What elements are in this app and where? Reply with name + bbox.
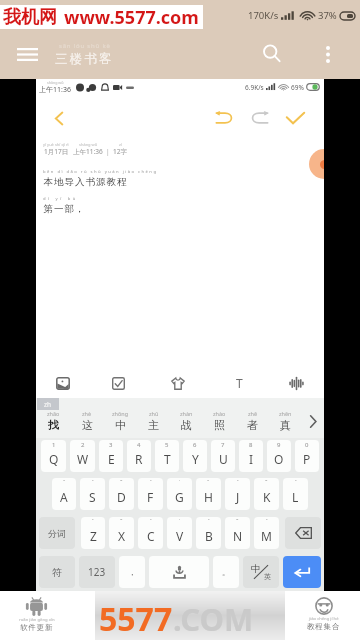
- button[interactable]: Redo: [248, 106, 272, 130]
- staticText: 1: [52, 441, 56, 449]
- staticText: ˊ: [92, 478, 94, 486]
- staticText: 4: [137, 441, 141, 449]
- staticText: ˙: [179, 478, 181, 486]
- button[interactable]: Enter: [283, 556, 321, 588]
- staticText: 9: [277, 441, 281, 449]
- staticText: www.5577.com: [64, 5, 199, 29]
- staticText: ˉ: [207, 478, 210, 486]
- button[interactable]: zhě: [236, 401, 269, 441]
- button[interactable]: Switch Chinese English: [243, 556, 279, 588]
- staticText: ，: [128, 567, 136, 577]
- button[interactable]: ˇ: [109, 478, 134, 510]
- button[interactable]: Text style: [226, 370, 252, 396]
- button[interactable]: Checklist: [105, 370, 131, 396]
- button[interactable]: Done: [282, 106, 308, 130]
- staticText: zhào: [213, 410, 226, 417]
- button[interactable]: More options: [310, 36, 346, 72]
- staticText: 5: [165, 441, 169, 449]
- button[interactable]: shū yuán: [143, 597, 216, 635]
- button[interactable]: ˊ: [81, 517, 105, 549]
- button[interactable]: ˉ: [196, 478, 221, 510]
- staticText: L: [292, 489, 299, 505]
- staticText: ˙: [179, 517, 181, 525]
- staticText: 69%: [291, 83, 304, 92]
- button[interactable]: More candidates: [302, 401, 324, 441]
- button[interactable]: ˊ: [254, 517, 279, 549]
- staticText: 这: [82, 418, 93, 432]
- button[interactable]: 6: [183, 440, 207, 472]
- staticText: 英: [264, 572, 271, 581]
- button[interactable]: Back: [47, 106, 71, 130]
- staticText: .COM: [173, 598, 254, 640]
- staticText: 本地导入书源教程: [43, 176, 127, 188]
- staticText: ˊ: [208, 517, 210, 525]
- button[interactable]: zhàn: [170, 401, 203, 441]
- button[interactable]: 5: [155, 440, 179, 472]
- button[interactable]: 1: [41, 440, 66, 472]
- staticText: 37%: [318, 9, 337, 22]
- button[interactable]: 9: [267, 440, 291, 472]
- button[interactable]: 2: [70, 440, 95, 472]
- staticText: Q: [49, 451, 59, 467]
- button[interactable]: zhè: [70, 401, 104, 441]
- staticText: U: [219, 451, 228, 467]
- button[interactable]: ˇ: [225, 517, 250, 549]
- button[interactable]: ˋ: [138, 517, 163, 549]
- button[interactable]: ˙: [167, 517, 192, 549]
- staticText: ˇ: [236, 517, 239, 525]
- button[interactable]: Undo: [212, 106, 236, 130]
- button[interactable]: zhōng: [104, 401, 137, 441]
- staticText: 123: [88, 565, 106, 579]
- staticText: zhōng: [112, 410, 129, 417]
- button[interactable]: 分词: [39, 517, 75, 549]
- button[interactable]: 符: [39, 556, 75, 588]
- button[interactable]: Space and voice input: [149, 556, 209, 588]
- button[interactable]: 0: [295, 440, 319, 472]
- button[interactable]: ，: [119, 556, 145, 588]
- button[interactable]: ˋ: [283, 478, 308, 510]
- button[interactable]: Insert image: [50, 370, 76, 396]
- staticText: 我机网: [3, 6, 57, 29]
- button[interactable]: ˙: [167, 478, 192, 510]
- button[interactable]: zhào: [203, 401, 236, 441]
- button[interactable]: Voice note: [283, 370, 309, 396]
- staticText: E: [108, 451, 115, 467]
- staticText: zhàn: [180, 410, 193, 417]
- button[interactable]: ˇ: [254, 478, 279, 510]
- button[interactable]: 3: [99, 440, 123, 472]
- staticText: 战: [181, 418, 192, 432]
- staticText: 6: [193, 441, 197, 449]
- staticText: F: [147, 489, 154, 505]
- staticText: 教程集合: [307, 622, 341, 631]
- staticText: O: [274, 451, 284, 467]
- button[interactable]: ˉ: [52, 478, 76, 510]
- button[interactable]: ˇ: [109, 517, 134, 549]
- button[interactable]: Open navigation menu: [10, 37, 44, 71]
- staticText: 170K/s: [248, 9, 279, 22]
- staticText: T: [236, 375, 243, 391]
- button[interactable]: ˊ: [225, 478, 250, 510]
- button[interactable]: jiào chéng jí hé: [287, 597, 360, 635]
- button[interactable]: ˋ: [138, 478, 163, 510]
- button[interactable]: zhēn: [269, 401, 302, 441]
- button[interactable]: Assistant: [309, 149, 324, 179]
- staticText: W: [77, 451, 89, 467]
- button[interactable]: Search: [252, 34, 292, 74]
- button[interactable]: 8: [239, 440, 263, 472]
- staticText: zhǔ: [149, 410, 159, 417]
- button[interactable]: ruǎn jiàn gēng xīn: [0, 597, 73, 635]
- button[interactable]: ˊ: [196, 517, 221, 549]
- button[interactable]: 4: [127, 440, 151, 472]
- button[interactable]: 7: [211, 440, 235, 472]
- button[interactable]: zhǔ: [137, 401, 170, 441]
- button[interactable]: ˊ: [80, 478, 105, 510]
- button[interactable]: 123: [79, 556, 115, 588]
- staticText: A: [60, 489, 68, 505]
- button[interactable]: zhǎo: [36, 401, 70, 441]
- staticText: M: [261, 528, 272, 544]
- staticText: 6.9K/s: [245, 83, 264, 92]
- button[interactable]: 。: [213, 556, 239, 588]
- button[interactable]: Backspace: [285, 517, 321, 549]
- button[interactable]: Template: [165, 370, 191, 396]
- staticText: zì: [119, 142, 122, 147]
